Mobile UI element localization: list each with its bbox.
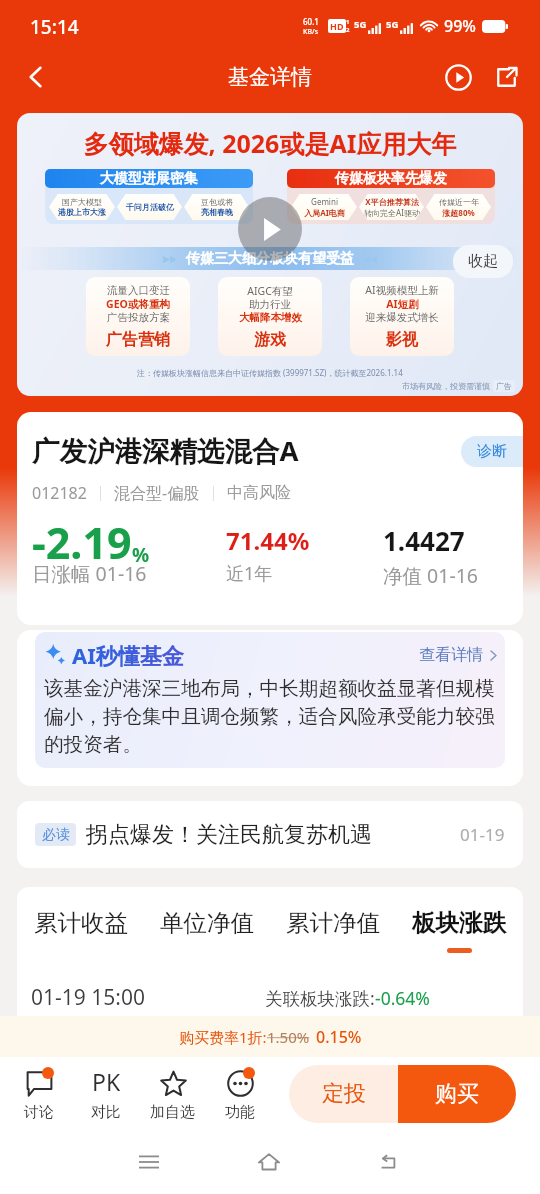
staticText: 1.50%: [267, 1027, 310, 1047]
button[interactable]: 板块涨跌: [412, 908, 506, 953]
staticText: AI秒懂基金: [72, 640, 184, 670]
button[interactable]: 收起: [453, 245, 513, 278]
staticText: 流量入口变迁: [107, 284, 170, 297]
staticText: KB/s: [303, 27, 319, 37]
button[interactable]: PK: [72, 1066, 139, 1122]
button[interactable]: 累计收益: [34, 908, 128, 948]
staticText: 广告投放方案: [107, 311, 170, 324]
staticText: 1: [346, 18, 350, 26]
button[interactable]: Recents: [125, 1138, 173, 1186]
button[interactable]: Play audio: [434, 53, 482, 101]
staticText: 亮相春晚: [201, 207, 233, 217]
button[interactable]: 功能: [206, 1066, 273, 1122]
staticText: 广发沪港深精选混合A: [32, 432, 299, 470]
staticText: 01-19 15:00: [31, 983, 145, 1012]
staticText: 加自选: [150, 1103, 195, 1122]
button[interactable]: Play video: [238, 197, 302, 261]
staticText: PK: [92, 1066, 121, 1093]
staticText: 基金详情: [228, 64, 312, 90]
staticText: 涨超80%: [442, 207, 475, 218]
button[interactable]: 多领域爆发, 2026或是AI应用大年: [17, 113, 523, 396]
button[interactable]: 诊断: [461, 436, 523, 467]
staticText: 功能: [225, 1103, 255, 1122]
staticText: 近1年: [226, 561, 273, 586]
staticText: 0.15%: [316, 1026, 362, 1048]
staticText: ▶▶: [163, 254, 177, 264]
staticText: 多领域爆发, 2026或是AI应用大年: [17, 126, 523, 160]
button[interactable]: Home: [245, 1138, 293, 1186]
staticText: 购买费率1折:: [179, 1027, 267, 1047]
button[interactable]: 单位净值: [160, 908, 254, 948]
staticText: 60.1: [303, 16, 319, 27]
staticText: ◀◀: [363, 254, 377, 264]
staticText: 累计净值: [286, 908, 380, 938]
staticText: AI视频模型上新: [365, 283, 439, 297]
button[interactable]: Share: [482, 53, 530, 101]
staticText: 助力行业: [249, 298, 291, 311]
staticText: 注：传媒板块涨幅信息来自中证传媒指数 (399971.SZ)，统计截至2026.…: [137, 367, 403, 378]
staticText: 关联板块涨跌:: [265, 986, 375, 1010]
staticText: %: [132, 542, 150, 568]
staticText: 15:14: [30, 14, 79, 40]
staticText: GEO或将重构: [106, 297, 170, 311]
staticText: 2: [346, 26, 350, 34]
staticText: 诊断: [477, 442, 507, 461]
staticText: -0.64%: [375, 986, 430, 1010]
staticText: 012182: [32, 482, 87, 504]
staticText: 迎来爆发式增长: [365, 311, 439, 324]
staticText: 传媒近一年: [439, 197, 479, 207]
staticText: 对比: [91, 1103, 121, 1122]
staticText: 国产大模型: [62, 197, 102, 207]
staticText: 5G: [386, 18, 399, 31]
staticText: 广告: [496, 381, 512, 391]
staticText: 该基金沪港深三地布局，中长期超额收益显著但规模偏小，持仓集中且调仓频繁，适合风险…: [44, 676, 498, 757]
button[interactable]: 加自选: [139, 1066, 206, 1122]
staticText: 大幅降本增效: [239, 311, 302, 324]
staticText: AIGC有望: [247, 284, 293, 298]
staticText: 影视: [386, 330, 418, 350]
staticText: 市场有风险，投资需谨慎: [402, 381, 490, 391]
button[interactable]: AI秒懂基金: [35, 632, 505, 768]
staticText: 转向完全AI驱动: [364, 207, 420, 218]
staticText: HD: [330, 20, 344, 32]
staticText: 净值 01-16: [383, 562, 478, 589]
staticText: 查看详情: [419, 645, 483, 665]
staticText: 购买: [435, 1080, 479, 1108]
button[interactable]: 讨论: [5, 1066, 72, 1122]
staticText: 传媒三大细分板块有望受益: [186, 250, 354, 268]
staticText: 拐点爆发！关注民航复苏机遇: [86, 821, 372, 849]
staticText: 日涨幅 01-16: [32, 560, 147, 587]
button[interactable]: 必读: [17, 801, 523, 868]
button[interactable]: 查看详情: [419, 645, 498, 665]
staticText: 5G: [354, 18, 367, 31]
button[interactable]: Back: [364, 1138, 412, 1186]
staticText: 01-19: [460, 823, 505, 846]
staticText: 99%: [444, 15, 476, 37]
staticText: 定投: [322, 1080, 366, 1108]
staticText: 广告营销: [106, 330, 170, 350]
button[interactable]: 定投: [289, 1065, 398, 1123]
staticText: 单位净值: [160, 908, 254, 938]
staticText: 累计收益: [34, 908, 128, 938]
staticText: 板块涨跌: [412, 908, 506, 938]
staticText: 大模型进展密集: [100, 170, 198, 188]
button[interactable]: 购买: [398, 1065, 516, 1123]
button[interactable]: Back: [12, 53, 60, 101]
staticText: 混合型-偏股: [114, 482, 200, 504]
staticText: 港股上市大涨: [58, 207, 106, 217]
staticText: 71.44%: [226, 524, 310, 557]
staticText: X平台推荐算法: [365, 196, 419, 207]
staticText: 豆包或将: [201, 197, 233, 207]
staticText: 中高风险: [227, 483, 291, 503]
button[interactable]: 累计净值: [286, 908, 380, 948]
staticText: 入局AI电商: [304, 207, 345, 218]
staticText: 必读: [42, 826, 70, 844]
staticText: 收起: [468, 252, 498, 271]
staticText: 1.4427: [383, 523, 465, 558]
staticText: 讨论: [24, 1103, 54, 1122]
staticText: 游戏: [254, 330, 286, 350]
staticText: AI短剧: [386, 297, 419, 311]
staticText: 传媒板块率先爆发: [335, 170, 447, 188]
staticText: Gemini: [311, 196, 338, 207]
staticText: 千问月活破亿: [126, 202, 174, 212]
